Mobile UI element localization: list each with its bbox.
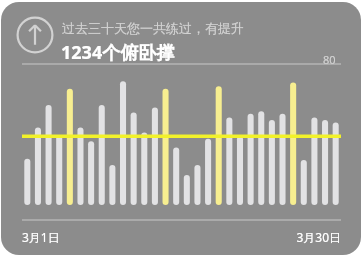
staticText: 3月1日 (22, 229, 60, 245)
staticText: 过去三十天您一共练过，有提升 (62, 20, 244, 36)
staticText: 80 (323, 52, 336, 67)
staticText: 1234个俯卧撑 (61, 40, 175, 65)
button[interactable]: Improved (16, 16, 54, 54)
staticText: 3月30日 (291, 229, 341, 247)
button[interactable]: Improved (1, 2, 361, 255)
